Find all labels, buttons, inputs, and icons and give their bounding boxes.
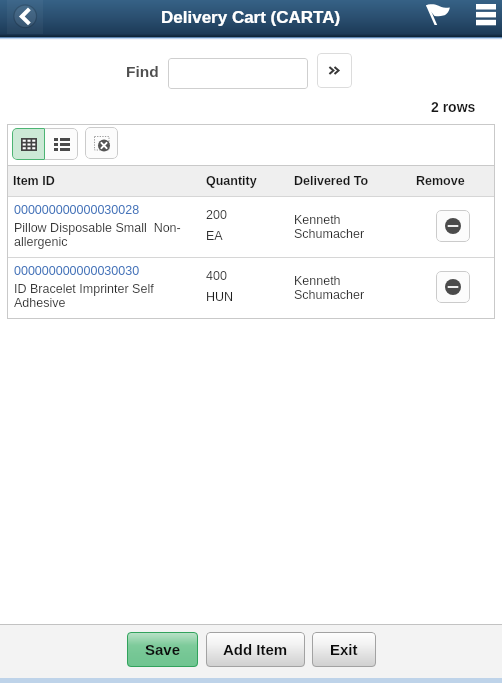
staticText: Save <box>145 641 181 658</box>
staticText: allergenic <box>14 235 68 249</box>
staticText: EA <box>206 229 223 243</box>
button[interactable]: Back <box>7 0 43 36</box>
button[interactable]: Grid view <box>12 128 45 160</box>
button[interactable]: Remove item <box>436 271 470 303</box>
button[interactable]: List view <box>45 128 78 160</box>
button[interactable]: Menu <box>466 0 502 36</box>
button[interactable]: Clear filters <box>85 127 118 159</box>
button[interactable]: Remove item <box>436 210 470 242</box>
staticText: Delivery Cart (CARTA) <box>161 8 341 27</box>
staticText: Exit <box>330 641 358 658</box>
staticText: Remove <box>416 174 465 188</box>
staticText: 200 <box>206 208 227 222</box>
staticText: 000000000000030028 <box>14 203 140 217</box>
staticText: Item ID <box>13 174 55 188</box>
button[interactable] <box>168 58 308 89</box>
button[interactable]: 000000000000030030 <box>7 258 495 318</box>
button[interactable]: Flag <box>419 0 456 36</box>
staticText: Quantity <box>206 174 257 188</box>
button[interactable]: 000000000000030028 <box>7 197 495 257</box>
button[interactable]: Save <box>127 632 198 667</box>
staticText: HUN <box>206 290 234 304</box>
staticText: Adhesive <box>14 296 66 310</box>
staticText: 400 <box>206 269 227 283</box>
staticText: ID Bracelet Imprinter Self <box>14 282 154 296</box>
staticText: Add Item <box>223 641 288 658</box>
button[interactable]: Search <box>317 53 352 88</box>
staticText: Pillow Disposable Small Non- <box>14 221 181 235</box>
staticText: Find <box>126 63 159 80</box>
staticText: Delivered To <box>294 174 369 188</box>
staticText: Kenneth <box>294 274 341 288</box>
staticText: 000000000000030030 <box>14 264 140 278</box>
button[interactable]: Exit <box>312 632 376 667</box>
staticText: 2 rows <box>431 99 476 115</box>
staticText: Kenneth <box>294 213 341 227</box>
staticText: Schumacher <box>294 288 365 302</box>
button[interactable]: Add Item <box>206 632 305 667</box>
staticText: Schumacher <box>294 227 365 241</box>
